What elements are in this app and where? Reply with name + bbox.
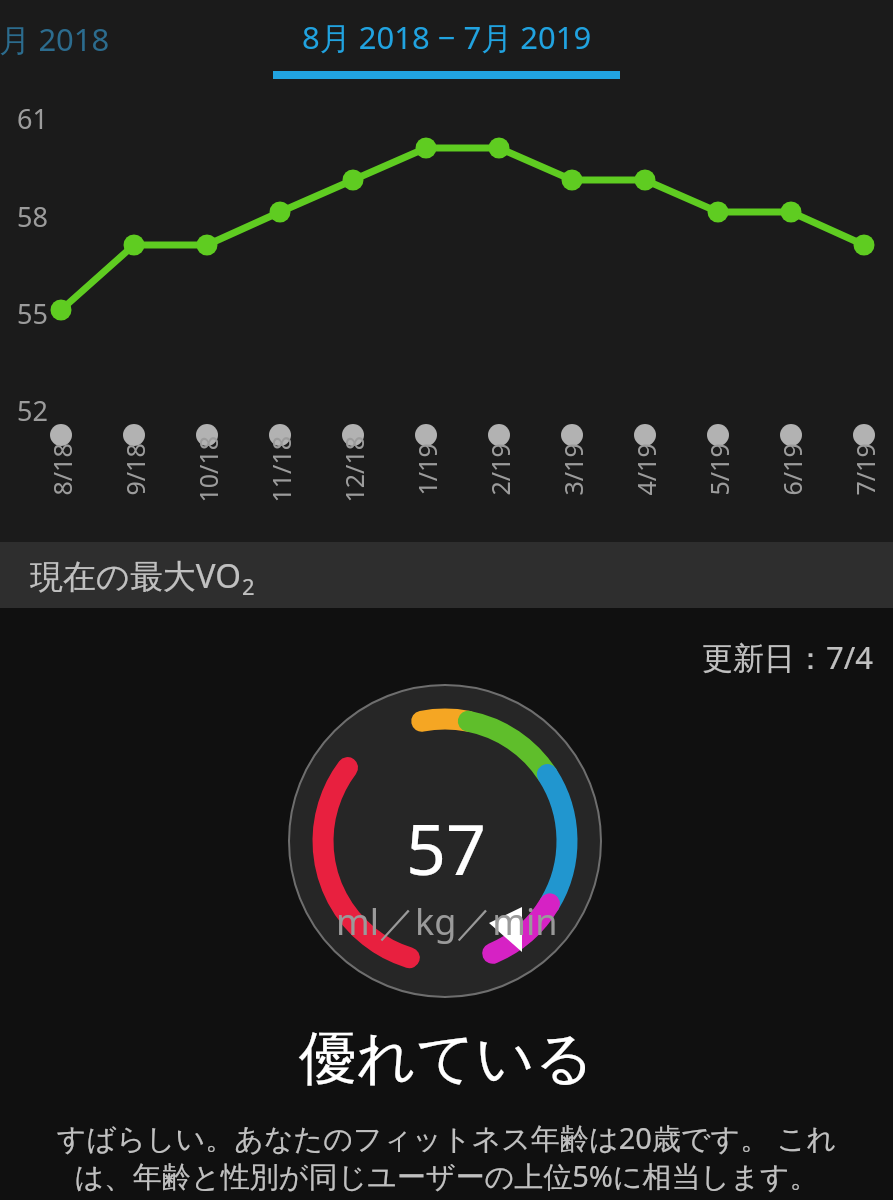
staticText: 52 xyxy=(17,392,48,429)
staticText: 10/18 xyxy=(190,435,224,502)
button[interactable]: 7 − 7月 2018 xyxy=(0,8,190,70)
staticText: 2/19 xyxy=(482,442,516,495)
staticText: すばらしい。あなたのフィットネス年齢は20歳です。 これは、年齢と性別が同じユー… xyxy=(50,1118,843,1196)
staticText: 58 xyxy=(17,198,48,235)
staticText: 5/19 xyxy=(701,442,735,495)
staticText: 11/18 xyxy=(263,435,297,502)
staticText: 更新日：7/4 xyxy=(0,636,873,678)
staticText: 7/19 xyxy=(847,442,881,495)
staticText: 12/18 xyxy=(336,435,370,502)
staticText: 優れている xyxy=(0,1022,893,1095)
staticText: 6/19 xyxy=(774,442,808,495)
staticText: ml／kg／min xyxy=(336,897,558,946)
other: VO2 max gauge xyxy=(0,0,893,1200)
staticText: 3/19 xyxy=(555,442,589,495)
staticText: 4/19 xyxy=(628,442,662,495)
staticText: 7 − 7月 2018 xyxy=(0,18,110,60)
staticText: 1/19 xyxy=(409,442,443,495)
staticText: 57 xyxy=(406,800,487,895)
staticText: 2 xyxy=(242,571,255,601)
staticText: 8/18 xyxy=(44,442,78,495)
button[interactable]: 現在の最大VO xyxy=(0,542,893,608)
staticText: 9/18 xyxy=(117,442,151,495)
staticText: 55 xyxy=(17,295,48,332)
staticText: 現在の最大VO xyxy=(30,553,242,598)
staticText: 8月 2018 − 7月 2019 xyxy=(302,16,592,58)
staticText: 61 xyxy=(17,100,48,137)
button[interactable]: 8月 2018 − 7月 2019 xyxy=(273,8,620,79)
